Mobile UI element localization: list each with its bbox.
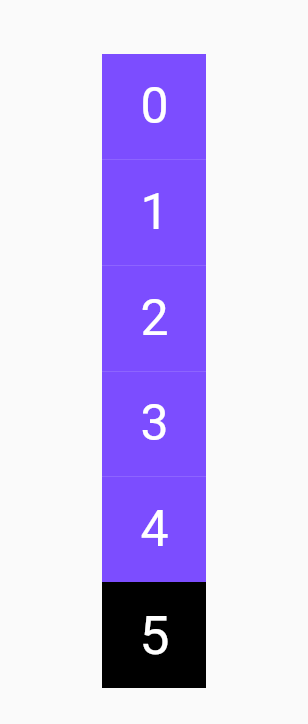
staticText: 3 — [140, 394, 169, 453]
staticText: 4 — [140, 500, 169, 559]
button[interactable]: 3 — [102, 371, 206, 476]
button[interactable]: 4 — [102, 476, 206, 582]
button[interactable]: 0 — [102, 54, 206, 159]
button[interactable]: 1 — [102, 159, 206, 265]
button[interactable]: 5 — [102, 582, 206, 688]
staticText: 1 — [140, 183, 169, 242]
staticText: 5 — [139, 604, 170, 667]
staticText: 2 — [140, 289, 169, 348]
staticText: 0 — [140, 77, 169, 136]
button[interactable]: 2 — [102, 265, 206, 371]
